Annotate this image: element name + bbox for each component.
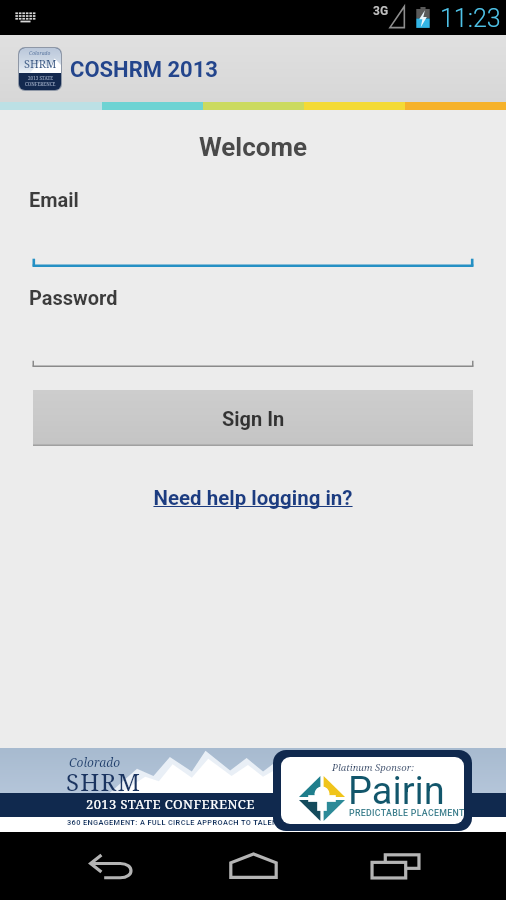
- staticText: 360 ENGAGEMENT: A FULL CIRCLE APPROACH T…: [67, 818, 283, 827]
- staticText: Password: [29, 286, 118, 309]
- button[interactable]: Home: [212, 839, 294, 893]
- staticText: Welcome: [0, 132, 506, 162]
- staticText: Sign In: [222, 407, 285, 430]
- staticText: 2013 STATE CONFERENCE: [86, 795, 255, 813]
- button[interactable]: Back: [71, 839, 153, 893]
- staticText: 2013 STATE: [28, 75, 54, 81]
- button[interactable]: Recent apps: [354, 839, 436, 893]
- staticText: Platinum Sponsor:: [332, 761, 414, 774]
- staticText: SHRM: [66, 765, 142, 798]
- staticText: PREDICTABLE PLACEMENT: [349, 808, 464, 818]
- staticText: 3G: [373, 4, 389, 18]
- staticText: Colorado: [69, 754, 121, 770]
- staticText: 11:23: [440, 4, 501, 33]
- staticText: COSHRM 2013: [70, 57, 218, 83]
- staticText: Pairin: [348, 769, 445, 814]
- staticText: SHRM: [24, 56, 57, 71]
- staticText: Email: [29, 188, 79, 211]
- button[interactable]: Sign In: [33, 390, 473, 446]
- staticText: Colorado: [29, 50, 51, 57]
- staticText: CONFERENCE: [25, 81, 56, 87]
- button[interactable]: Need help logging in?: [0, 486, 506, 510]
